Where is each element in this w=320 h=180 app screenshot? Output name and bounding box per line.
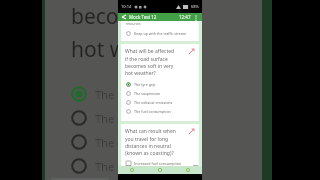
button[interactable]: Next question: [174, 166, 202, 174]
button[interactable]: Pause test: [146, 166, 174, 174]
button[interactable]: Back: [121, 14, 127, 20]
button[interactable]: The exhaust emissions: [121, 98, 199, 107]
button[interactable]: What will be affected if the road surfac…: [121, 44, 199, 121]
staticText: resources: [126, 22, 141, 26]
staticText: Increased fuel consumption: [134, 161, 182, 166]
staticText: What can result when you travel for long…: [125, 128, 176, 156]
button[interactable]: Increased fuel consumption: [121, 160, 199, 166]
staticText: The exhaust emissions: [134, 100, 173, 105]
button[interactable]: Keep up with the traffic stream: [121, 29, 199, 38]
button[interactable]: resources: [121, 21, 199, 41]
staticText: The suspension: [134, 91, 161, 96]
button[interactable]: Bookmark: [188, 48, 195, 55]
button[interactable]: The fuel consumption: [121, 107, 199, 116]
staticText: hot we: [71, 35, 139, 64]
staticText: The f: [95, 159, 121, 174]
button[interactable]: Previous question: [118, 166, 146, 174]
staticText: 68%: [191, 4, 199, 9]
button[interactable]: Bookmark: [188, 128, 195, 135]
staticText: Keep up with the traffic stream: [134, 31, 187, 36]
button[interactable]: The suspension: [121, 89, 199, 98]
staticText: The s: [95, 111, 123, 126]
staticText: What will be affected if the road surfac…: [125, 48, 175, 76]
staticText: The e: [95, 135, 124, 150]
staticText: Mock Test 12: [129, 14, 157, 20]
staticText: The tyre grip: [134, 82, 156, 87]
staticText: 12:47: [179, 14, 191, 20]
staticText: 10:14: [121, 4, 132, 9]
staticText: becom: [71, 2, 139, 31]
button[interactable]: More options: [193, 14, 199, 20]
staticText: The t: [95, 87, 121, 102]
staticText: The fuel consumption: [134, 109, 171, 114]
button[interactable]: What can result when you travel for long…: [121, 124, 199, 166]
button[interactable]: The tyre grip: [121, 80, 199, 89]
